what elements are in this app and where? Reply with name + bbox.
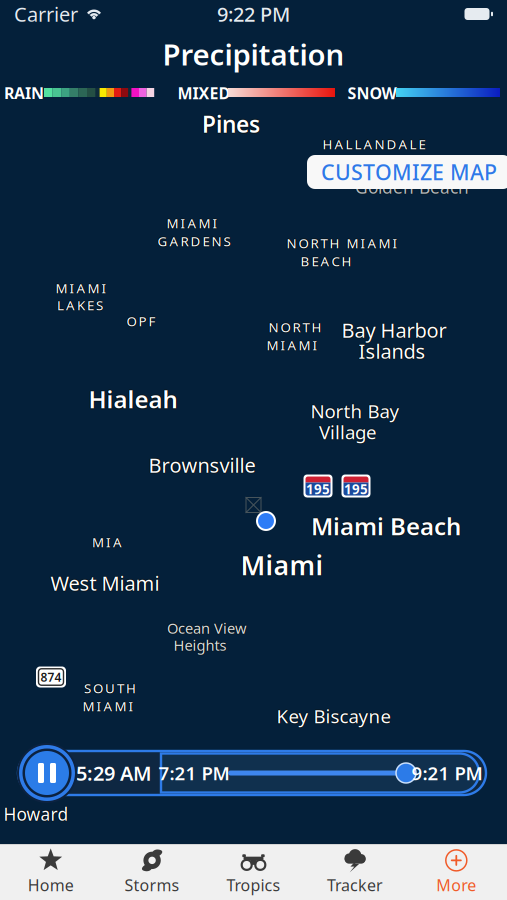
staticText: L A K E S xyxy=(57,297,103,315)
staticText: Islands xyxy=(357,338,424,364)
staticText: N O R T H M I A M I xyxy=(285,234,396,252)
staticText: M I A M I xyxy=(265,336,316,354)
staticText: North Bay xyxy=(310,400,399,424)
staticText: Pines xyxy=(202,109,260,139)
staticText: Key Biscayne xyxy=(275,704,390,728)
staticText: Village xyxy=(319,421,377,445)
staticText: Pines xyxy=(202,108,260,138)
staticText: Bay Harbor xyxy=(341,316,446,342)
staticText: M I A xyxy=(92,534,122,552)
staticText: West Miami xyxy=(50,569,159,595)
staticText: Golden Beach xyxy=(355,174,469,197)
staticText: 9:21 PM xyxy=(411,761,482,785)
staticText: G A R D E N S xyxy=(156,232,229,250)
staticText: Key Biscayne xyxy=(276,702,391,727)
staticText: RAIN xyxy=(4,82,44,104)
button[interactable]: Tropics xyxy=(203,844,304,900)
staticText: Home xyxy=(28,874,74,896)
staticText: Heights xyxy=(175,635,228,655)
button[interactable]: CUSTOMIZE MAP xyxy=(307,155,507,189)
staticText: L A K E S xyxy=(57,295,103,313)
staticText: M I A xyxy=(92,532,122,550)
staticText: Carrier xyxy=(14,1,78,27)
staticText: L A K E S xyxy=(56,296,102,314)
staticText: O P F xyxy=(126,312,155,330)
staticText: 195 xyxy=(306,480,330,498)
staticText: Tracker xyxy=(327,874,383,896)
image xyxy=(245,497,261,513)
staticText: 5:29 AM xyxy=(76,760,152,786)
staticText: Hialeah xyxy=(88,382,177,414)
staticText: O P F xyxy=(126,311,155,329)
staticText: Heights xyxy=(172,635,225,655)
staticText: M I A M I xyxy=(57,279,108,297)
staticText: M I A M I xyxy=(82,698,133,716)
button[interactable]: Pause xyxy=(16,742,78,804)
staticText: West Miami xyxy=(49,570,158,596)
staticText: Miami Beach xyxy=(311,511,461,543)
staticText: Islands xyxy=(358,338,425,364)
button[interactable]: More xyxy=(406,844,507,900)
staticText: M I A M I xyxy=(168,214,219,232)
staticText: Brownsville xyxy=(147,452,254,478)
staticText: Brownsville xyxy=(148,452,255,478)
staticText: North Bay xyxy=(310,399,399,423)
staticText: M I A M I xyxy=(166,214,217,232)
staticText: Key Biscayne xyxy=(278,704,393,728)
staticText: O P F xyxy=(126,313,155,331)
button[interactable]: Tracker xyxy=(304,844,406,900)
staticText: L A K E S xyxy=(57,296,103,314)
staticText: Precipitation xyxy=(162,34,344,73)
staticText: Tropics xyxy=(226,874,280,896)
staticText: M I A M I xyxy=(55,278,106,296)
staticText: G A R D E N S xyxy=(157,232,230,250)
staticText: More xyxy=(436,874,476,896)
staticText: Village xyxy=(319,418,377,443)
staticText: Village xyxy=(319,420,377,444)
staticText: B E A C H xyxy=(300,252,351,270)
staticText: Heights xyxy=(173,636,226,656)
staticText: M I A xyxy=(91,533,121,551)
staticText: Pines xyxy=(202,110,260,140)
staticText: Miami xyxy=(239,547,322,583)
staticText: Village xyxy=(320,420,378,444)
staticText: H A L L A N D A L E xyxy=(322,134,425,152)
staticText: Village xyxy=(318,420,376,444)
staticText: Miami xyxy=(240,546,323,582)
staticText: Golden Beach xyxy=(355,175,469,198)
staticText: M I A M I xyxy=(268,336,319,354)
button[interactable]: Storms xyxy=(101,844,203,900)
staticText: G A R D E N S xyxy=(157,233,230,251)
button[interactable]: Home xyxy=(0,844,101,900)
staticText: West Miami xyxy=(50,570,159,596)
staticText: M I A M I xyxy=(54,279,105,297)
staticText: B E A C H xyxy=(300,251,351,269)
staticText: M I A M I xyxy=(82,696,133,714)
staticText: S O U T H xyxy=(84,680,136,698)
staticText: Miami Beach xyxy=(312,510,462,542)
staticText: Islands xyxy=(360,338,427,364)
staticText: S O U T H xyxy=(84,679,136,697)
staticText: Bay Harbor xyxy=(341,318,446,344)
staticText: North Bay xyxy=(309,399,398,423)
staticText: G A R D E N S xyxy=(157,231,230,249)
staticText: Hialeah xyxy=(88,383,177,415)
staticText: M I A M I xyxy=(55,280,106,298)
staticText: Brownsville xyxy=(148,451,255,477)
staticText: Ocean View xyxy=(167,618,247,638)
staticText: Golden Beach xyxy=(356,175,470,198)
staticText: Bay Harbor xyxy=(343,317,448,343)
staticText: M I A M I xyxy=(266,336,317,354)
staticText: O P F xyxy=(125,312,154,330)
staticText: G A R D E N S xyxy=(159,232,232,250)
staticText: Heights xyxy=(173,635,226,655)
staticText: Pines xyxy=(201,109,259,139)
staticText: SNOW xyxy=(347,82,396,104)
staticText: Howard xyxy=(3,804,68,827)
staticText: Miami xyxy=(240,548,323,584)
staticText: M I A M I xyxy=(82,697,133,715)
staticText: Heights xyxy=(173,634,226,654)
staticText: N O R T H M I A M I xyxy=(286,234,397,252)
staticText: M I A M I xyxy=(84,697,135,715)
staticText: Ocean View xyxy=(167,619,247,639)
